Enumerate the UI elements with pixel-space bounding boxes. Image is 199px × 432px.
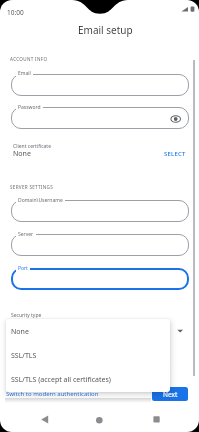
- button[interactable]: [11, 107, 189, 129]
- staticText: SSL/TLS: [11, 351, 37, 361]
- button[interactable]: Next: [152, 387, 188, 401]
- button[interactable]: [11, 74, 189, 96]
- staticText: SERVER SETTINGS: [10, 184, 53, 190]
- staticText: Email: [18, 70, 31, 77]
- staticText: Client certificate: [13, 143, 51, 150]
- staticText: Port: [18, 265, 28, 272]
- staticText: Email setup: [78, 23, 133, 37]
- staticText: 10:00: [7, 8, 24, 17]
- staticText: ACCOUNT INFO: [10, 56, 48, 62]
- staticText: None: [13, 149, 31, 159]
- button[interactable]: [11, 268, 189, 290]
- button[interactable]: Switch to modern authentication: [4, 388, 101, 400]
- staticText: Password: [18, 104, 41, 111]
- staticText: Next: [163, 390, 178, 399]
- staticText: Switch to modern authentication: [6, 390, 99, 398]
- button[interactable]: None: [6, 320, 170, 344]
- button[interactable]: SSL/TLS: [6, 344, 170, 368]
- button[interactable]: [11, 234, 189, 256]
- staticText: Server: [18, 231, 34, 238]
- button[interactable]: [11, 200, 189, 222]
- staticText: Security type: [11, 312, 42, 319]
- staticText: SSL/TLS (accept all certificates): [11, 375, 111, 385]
- staticText: SELECT: [164, 150, 186, 158]
- button[interactable]: SSL/TLS (accept all certificates): [6, 368, 170, 392]
- staticText: Domain\Username: [18, 197, 63, 204]
- staticText: None: [11, 327, 29, 337]
- button[interactable]: SELECT: [160, 148, 190, 160]
